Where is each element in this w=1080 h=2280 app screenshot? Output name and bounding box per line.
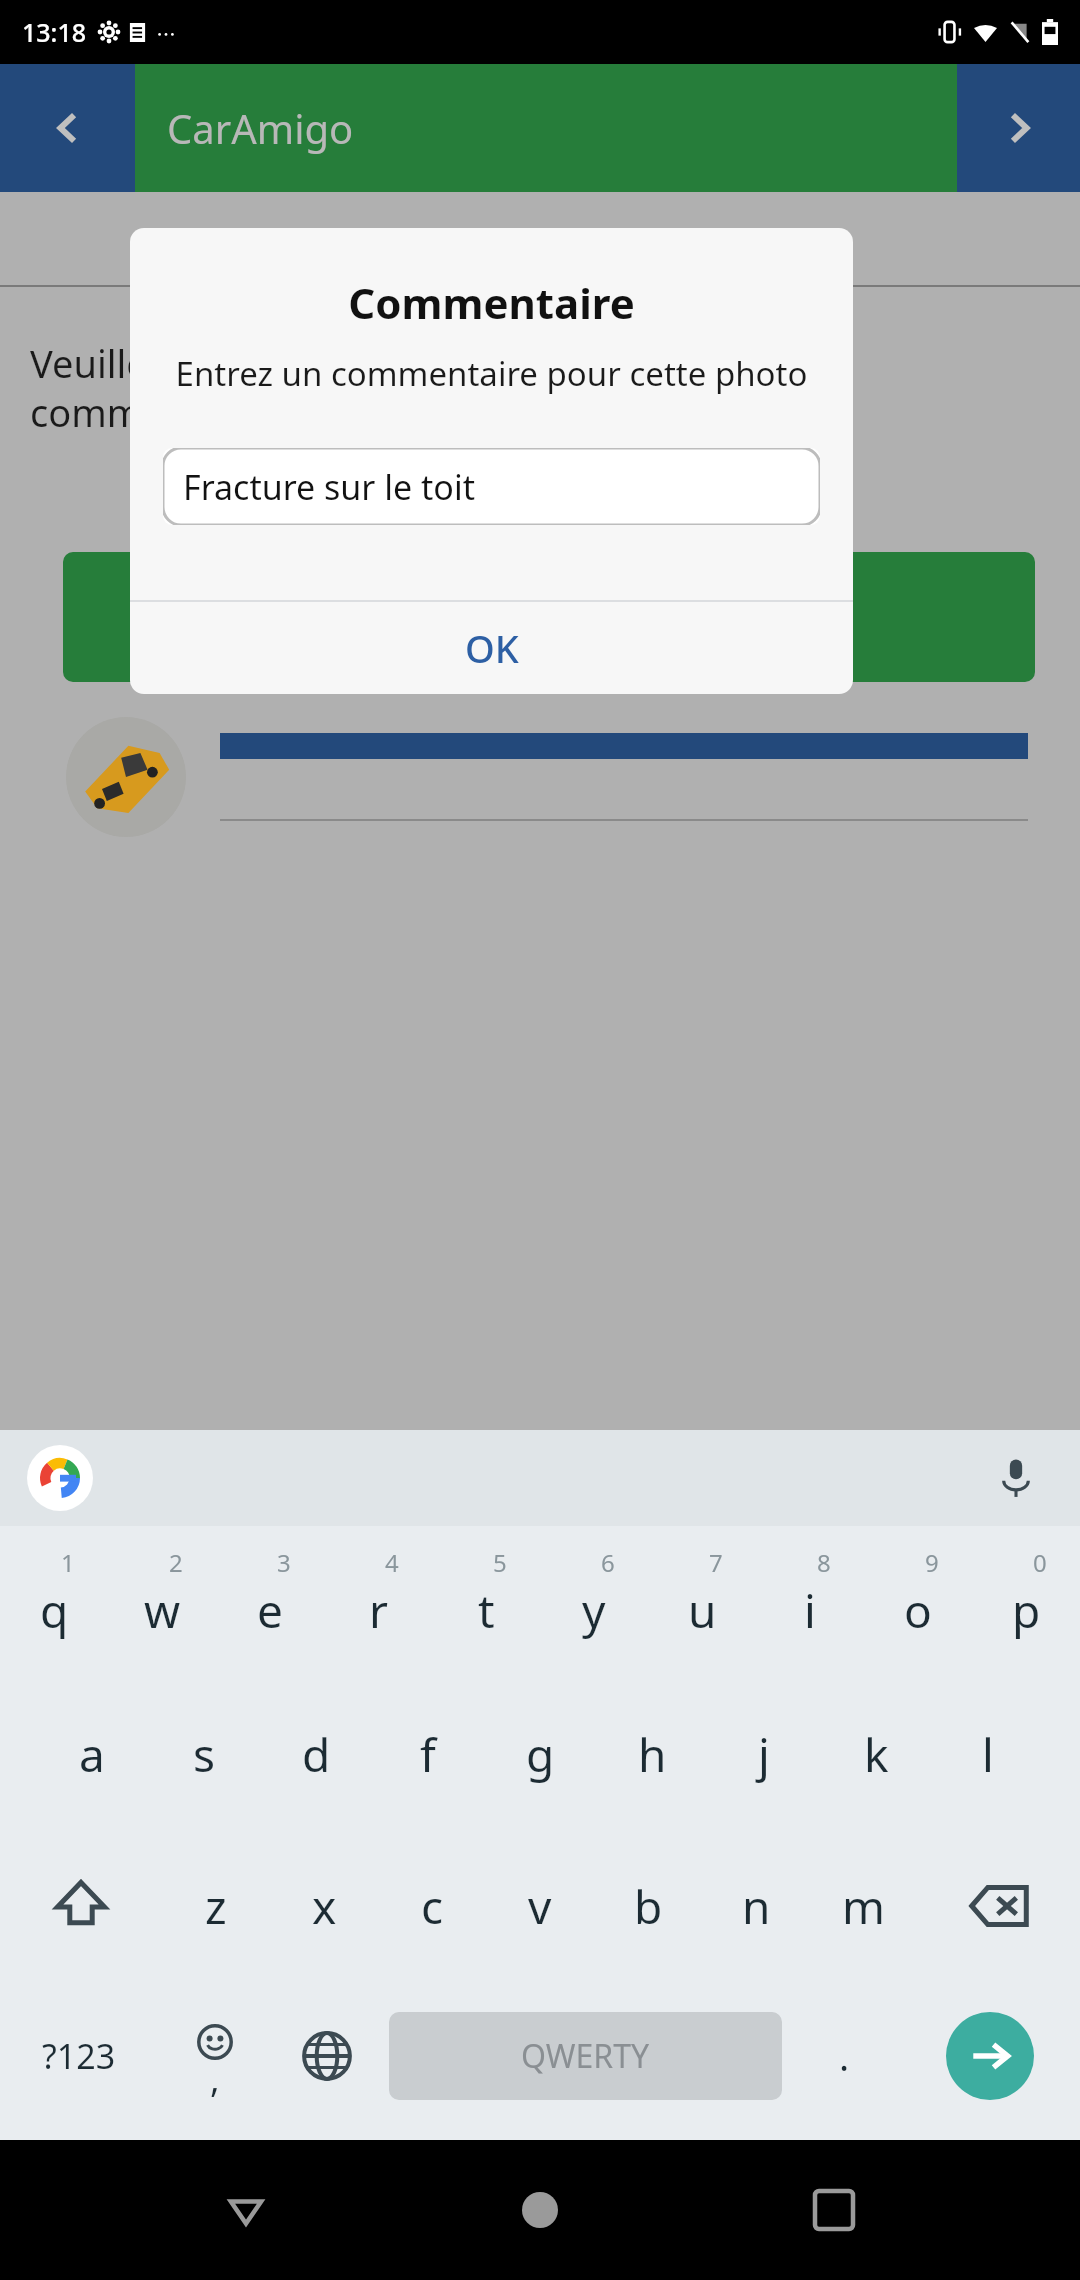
staticText: h bbox=[638, 1723, 667, 1786]
staticText: a bbox=[79, 1723, 105, 1786]
button[interactable]: j bbox=[708, 1678, 820, 1830]
button[interactable]: n bbox=[702, 1830, 810, 1982]
button[interactable]: k bbox=[820, 1678, 932, 1830]
staticText: 1 bbox=[61, 1546, 75, 1579]
staticText: j bbox=[758, 1723, 770, 1786]
staticText: 0 bbox=[1033, 1546, 1047, 1579]
button[interactable]: . bbox=[788, 1982, 900, 2130]
button[interactable] bbox=[745, 552, 1035, 682]
button[interactable]: 7 bbox=[648, 1526, 756, 1678]
staticText: i bbox=[804, 1579, 816, 1642]
button[interactable]: 6 bbox=[540, 1526, 648, 1678]
staticText: CarAmigo bbox=[167, 101, 354, 155]
staticText: e bbox=[257, 1579, 283, 1642]
button[interactable]: Google bbox=[27, 1445, 93, 1511]
button[interactable]: 8 bbox=[756, 1526, 864, 1678]
button[interactable]: Back bbox=[0, 64, 135, 192]
staticText: Fracture sur le toit bbox=[183, 464, 475, 510]
button[interactable]: 1 bbox=[0, 1526, 108, 1678]
staticText: Entrez un commentaire pour cette photo bbox=[146, 351, 837, 396]
staticText: y bbox=[582, 1579, 606, 1642]
staticText: 9 bbox=[925, 1546, 939, 1579]
button[interactable]: 5 bbox=[432, 1526, 540, 1678]
button[interactable]: 9 bbox=[864, 1526, 972, 1678]
staticText: Commentaire bbox=[130, 274, 853, 331]
button[interactable]: ?123 bbox=[0, 1982, 158, 2130]
staticText: 3 bbox=[277, 1546, 291, 1579]
staticText: k bbox=[864, 1723, 889, 1786]
button[interactable]: b bbox=[594, 1830, 702, 1982]
staticText: f bbox=[420, 1723, 436, 1786]
button[interactable]: 2 bbox=[108, 1526, 216, 1678]
button[interactable]: 0 bbox=[972, 1526, 1080, 1678]
button[interactable]: QWERTY bbox=[389, 2012, 782, 2100]
button[interactable]: Fracture sur le toit bbox=[163, 448, 820, 525]
staticText: b bbox=[634, 1875, 663, 1938]
button[interactable]: l bbox=[932, 1678, 1044, 1830]
staticText: x bbox=[312, 1875, 337, 1938]
button[interactable]: Emoji bbox=[158, 1982, 271, 2130]
button[interactable]: a bbox=[36, 1678, 148, 1830]
button[interactable]: Voice input bbox=[986, 1448, 1046, 1508]
staticText: OK bbox=[465, 622, 519, 674]
staticText: s bbox=[193, 1723, 216, 1786]
button[interactable]: h bbox=[596, 1678, 708, 1830]
button[interactable]: z bbox=[162, 1830, 270, 1982]
button[interactable]: Recents bbox=[786, 2162, 882, 2258]
button[interactable]: s bbox=[148, 1678, 260, 1830]
button[interactable]: g bbox=[484, 1678, 596, 1830]
staticText: t bbox=[478, 1579, 495, 1642]
staticText: q bbox=[40, 1579, 69, 1642]
button[interactable] bbox=[63, 552, 463, 682]
staticText: r bbox=[369, 1579, 388, 1642]
staticText: d bbox=[302, 1723, 331, 1786]
staticText: 5 bbox=[493, 1546, 507, 1579]
button[interactable]: 4 bbox=[324, 1526, 432, 1678]
button[interactable]: m bbox=[810, 1830, 918, 1982]
button[interactable]: Enter bbox=[900, 1982, 1080, 2130]
button[interactable]: f bbox=[372, 1678, 484, 1830]
button[interactable]: Home bbox=[492, 2162, 588, 2258]
staticText: ?123 bbox=[42, 2033, 116, 2079]
staticText: 6 bbox=[601, 1546, 615, 1579]
staticText: 13:18 bbox=[22, 15, 87, 49]
button[interactable]: d bbox=[260, 1678, 372, 1830]
staticText: QWERTY bbox=[521, 2034, 650, 2078]
button[interactable]: Delete bbox=[918, 1830, 1080, 1982]
staticText: u bbox=[688, 1579, 717, 1642]
staticText: g bbox=[526, 1723, 555, 1786]
staticText: l bbox=[982, 1723, 994, 1786]
staticText: . bbox=[839, 2030, 850, 2082]
staticText: z bbox=[205, 1875, 227, 1938]
button[interactable]: x bbox=[270, 1830, 378, 1982]
button[interactable]: 3 bbox=[216, 1526, 324, 1678]
button[interactable]: Change language bbox=[271, 1982, 383, 2130]
staticText: w bbox=[144, 1579, 181, 1642]
button[interactable]: CarAmigo bbox=[135, 64, 957, 192]
staticText: n bbox=[742, 1875, 771, 1938]
staticText: p bbox=[1012, 1579, 1041, 1642]
staticText: c bbox=[421, 1875, 444, 1938]
staticText: m bbox=[842, 1875, 886, 1938]
button[interactable]: c bbox=[378, 1830, 486, 1982]
staticText: 7 bbox=[709, 1546, 723, 1579]
button[interactable]: Forward bbox=[957, 64, 1080, 192]
staticText: 2 bbox=[169, 1546, 183, 1579]
button[interactable]: OK bbox=[130, 602, 853, 694]
staticText: Veuillez prendre une photo et mentionner… bbox=[30, 337, 1050, 438]
staticText: o bbox=[904, 1579, 932, 1642]
staticText: , bbox=[210, 2054, 220, 2103]
button[interactable]: v bbox=[486, 1830, 594, 1982]
button[interactable]: Back bbox=[198, 2162, 294, 2258]
staticText: v bbox=[528, 1875, 552, 1938]
staticText: 4 bbox=[385, 1546, 399, 1579]
staticText: 8 bbox=[817, 1546, 831, 1579]
button[interactable]: Shift bbox=[0, 1830, 162, 1982]
